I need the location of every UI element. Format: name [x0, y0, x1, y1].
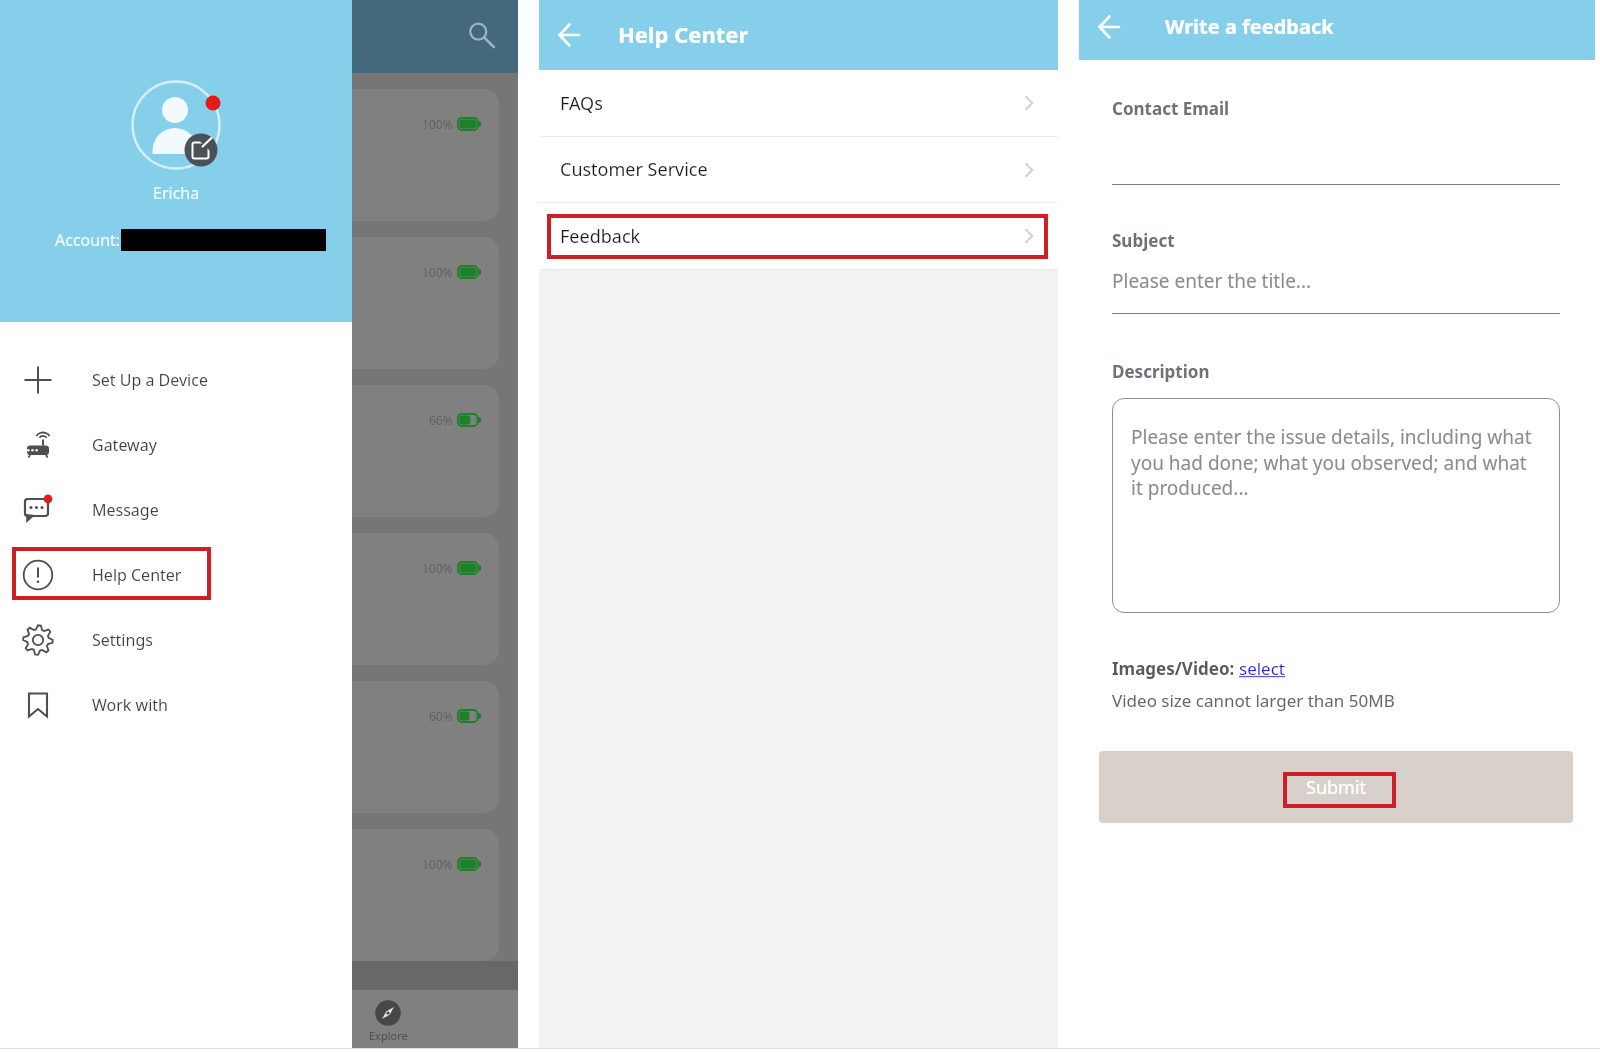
button[interactable]: Work with: [0, 672, 352, 737]
staticText: Set Up a Device: [92, 369, 208, 391]
staticText: 100%: [422, 264, 453, 280]
button[interactable]: Message: [0, 477, 352, 542]
staticText: Feedback: [560, 224, 641, 249]
staticText: 100%: [422, 560, 453, 576]
staticText: 100%: [422, 856, 453, 872]
button[interactable]: Search: [464, 18, 498, 52]
button[interactable]: 60%: [8, 681, 499, 813]
staticText: Subject: [1112, 229, 1175, 252]
button[interactable]: Explore: [355, 994, 421, 1046]
staticText: select: [1239, 657, 1286, 680]
button[interactable]: 100%: [8, 533, 499, 665]
staticText: 100%: [422, 116, 453, 132]
button[interactable]: Edit profile: [126, 75, 226, 175]
button[interactable]: 100%: [8, 89, 499, 221]
staticText: Work with: [92, 694, 168, 716]
button[interactable]: Help Center: [0, 542, 352, 607]
staticText: Submit: [1306, 775, 1367, 800]
staticText: Account:: [55, 229, 121, 251]
staticText: Help Center: [618, 19, 749, 49]
staticText: Message: [92, 499, 159, 521]
button[interactable]: select: [1239, 657, 1286, 680]
button[interactable]: Settings: [0, 607, 352, 672]
staticText: Settings: [92, 629, 153, 651]
staticText: Help Center: [92, 564, 182, 586]
staticText: 60%: [429, 708, 453, 724]
staticText: Description: [1112, 360, 1210, 383]
button[interactable]: Back: [539, 0, 599, 70]
button[interactable]: 66%: [8, 385, 499, 517]
staticText: Please enter the title...: [1112, 268, 1312, 294]
button[interactable]: Set Up a Device: [0, 347, 352, 412]
button[interactable]: Back: [1079, 0, 1139, 57]
staticText: Contact Email: [1112, 97, 1230, 120]
staticText: Video size cannot larger than 50MB: [1112, 689, 1395, 712]
staticText: Explore: [369, 1028, 408, 1043]
staticText: FAQs: [560, 91, 603, 116]
staticText: Customer Service: [560, 157, 708, 182]
button[interactable]: FAQs: [539, 70, 1058, 136]
staticText: Write a feedback: [1165, 13, 1334, 40]
button[interactable]: 100%: [8, 829, 499, 961]
staticText: Please enter the issue details, includin…: [1131, 424, 1536, 500]
button[interactable]: Customer Service: [539, 137, 1058, 202]
button[interactable]: Feedback: [539, 203, 1058, 269]
staticText: 66%: [429, 412, 453, 428]
button[interactable]: 100%: [8, 237, 499, 369]
button[interactable]: Gateway: [0, 412, 352, 477]
staticText: Gateway: [92, 434, 157, 456]
staticText: Ericha: [153, 182, 200, 204]
staticText: Images/Video:: [1112, 657, 1239, 680]
button[interactable]: Submit: [1099, 751, 1573, 823]
